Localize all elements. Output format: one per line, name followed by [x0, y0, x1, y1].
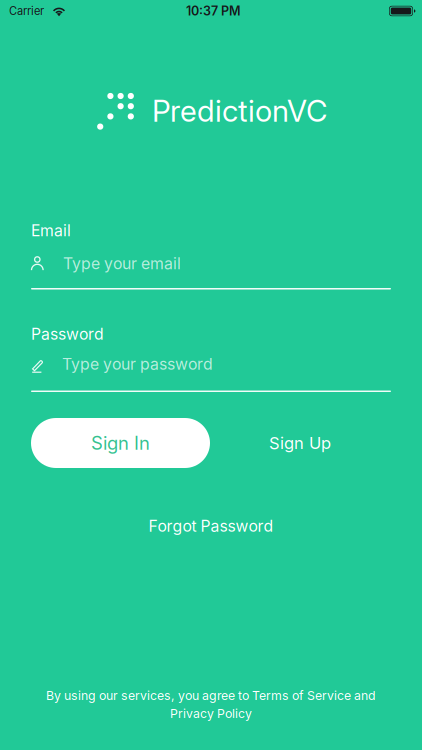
staticText: Carrier [9, 4, 44, 18]
staticText: Sign Up [269, 433, 331, 453]
button[interactable]: Sign In [31, 418, 210, 468]
staticText: Privacy Policy [170, 706, 252, 721]
staticText: Type your email [63, 254, 181, 273]
staticText: Sign In [91, 432, 150, 454]
button[interactable]: By using our services, you agree to Term… [0, 688, 422, 721]
staticText: Type your password [62, 354, 213, 373]
staticText: Forgot Password [148, 516, 273, 535]
staticText: By using our services, you agree to Term… [46, 688, 376, 703]
button[interactable]: Type your password [31, 355, 391, 372]
staticText: 10:37 PM [186, 3, 241, 19]
staticText: Email [31, 221, 71, 240]
staticText: PredictionVC [152, 93, 328, 129]
button[interactable]: Sign Up [242, 418, 358, 468]
button[interactable]: Type your email [31, 255, 391, 272]
button[interactable]: Forgot Password [31, 509, 391, 543]
staticText: Password [31, 324, 104, 343]
